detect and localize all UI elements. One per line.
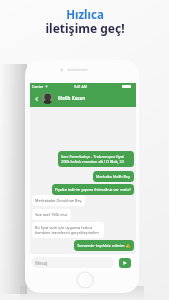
staticText: Merhaba Melih Bey (96, 174, 131, 179)
button[interactable]: Size özel 150k olur (35, 212, 68, 217)
staticText: Hızlıca (66, 7, 104, 23)
button[interactable]: Fiyatta indirim yapma ihtimaliniz var mı… (55, 187, 131, 192)
staticText: Merhabalar Dorukhan Bey (35, 198, 82, 203)
button[interactable]: Back (32, 94, 41, 103)
button[interactable]: Send (119, 258, 131, 268)
staticText: Fiyatta indirim yapma ihtimaliniz var mı… (55, 187, 131, 192)
staticText: San: Fenerbahçe - Trabzonspor fiyat 200k… (61, 154, 131, 164)
staticText: Mesaj (35, 260, 48, 266)
staticText: iletişime geç! (45, 20, 125, 36)
button[interactable]: Merhabalar Dorukhan Bey (35, 198, 82, 203)
staticText: Size özel 150k olur (35, 212, 68, 217)
staticText: Carrier (32, 84, 44, 89)
button[interactable]: Profile photo (42, 93, 53, 104)
staticText: 9:41 AM (74, 84, 87, 89)
button[interactable]: Mesaj (31, 257, 114, 268)
button[interactable]: Merhaba Melih Bey (96, 174, 131, 179)
staticText: Tamamdır teşekkür ederim 👍 (77, 243, 131, 248)
button[interactable]: Tamamdır teşekkür ederim 👍 (77, 243, 131, 248)
button[interactable]: Bu fiyat sizin için uygunsa hızlıca komb… (35, 225, 101, 235)
staticText: Bu fiyat sizin için uygunsa hızlıca komb… (35, 225, 101, 235)
button[interactable]: San: Fenerbahçe - Trabzonspor fiyat 200k… (61, 154, 131, 164)
staticText: Melih Kazan (58, 95, 86, 101)
